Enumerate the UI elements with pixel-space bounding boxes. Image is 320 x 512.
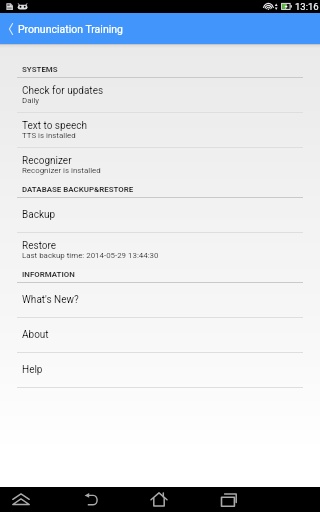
- staticText: Help: [22, 364, 43, 376]
- button[interactable]: Help: [0, 353, 320, 388]
- button[interactable]: Recognizer: [0, 148, 320, 183]
- staticText: 13:16: [295, 1, 319, 12]
- button[interactable]: Restore: [0, 233, 320, 268]
- button[interactable]: What's New?: [0, 283, 320, 318]
- button[interactable]: Recent apps: [210, 487, 246, 512]
- staticText: INFORMATION: [22, 270, 75, 279]
- staticText: What's New?: [22, 294, 79, 306]
- staticText: DATABASE BACKUP&RESTORE: [22, 185, 134, 194]
- staticText: Backup: [22, 209, 56, 221]
- staticText: Recognizer: [22, 155, 72, 167]
- button[interactable]: Back: [73, 487, 109, 512]
- staticText: Recognizer is installed: [22, 166, 101, 175]
- button[interactable]: Backup: [0, 198, 320, 233]
- staticText: Daily: [22, 96, 40, 105]
- staticText: Last backup time: 2014-05-29 13:44:30: [22, 251, 159, 260]
- button[interactable]: Pronunciation Training: [0, 13, 320, 44]
- button[interactable]: Home: [141, 487, 177, 512]
- staticText: Pronunciation Training: [18, 23, 123, 35]
- staticText: About: [22, 329, 49, 341]
- button[interactable]: Text to speech: [0, 113, 320, 148]
- button[interactable]: About: [0, 318, 320, 353]
- staticText: Restore: [22, 240, 57, 252]
- staticText: Check for updates: [22, 85, 104, 97]
- button[interactable]: Expand: [3, 487, 39, 512]
- staticText: Text to speech: [22, 120, 87, 132]
- staticText: TTS is installed: [22, 131, 76, 140]
- staticText: SYSTEMS: [22, 65, 58, 74]
- button[interactable]: Check for updates: [0, 78, 320, 113]
